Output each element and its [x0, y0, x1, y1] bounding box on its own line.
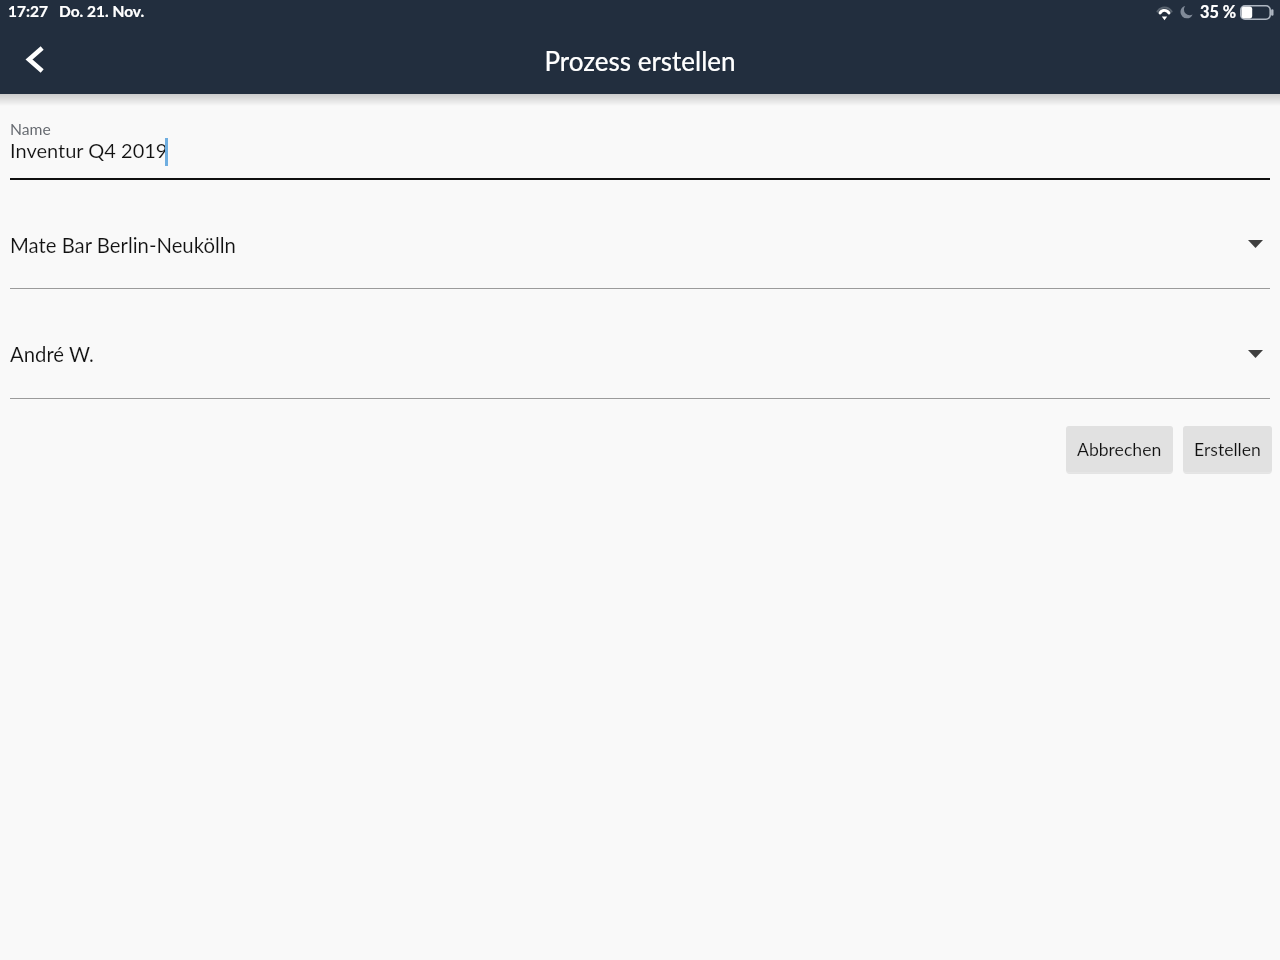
staticText: 17:27	[8, 2, 48, 21]
staticText: 35 %	[1200, 2, 1237, 22]
other: Akku 35 %	[1240, 5, 1274, 20]
other: Nicht stören	[1181, 5, 1193, 19]
button[interactable]: Name	[0, 94, 1280, 178]
staticText: Mate Bar Berlin-Neukölln	[10, 233, 236, 257]
button[interactable]: Mate Bar Berlin-Neukölln	[0, 178, 1280, 288]
staticText: André W.	[10, 342, 94, 366]
other: WLAN	[1156, 4, 1173, 20]
button[interactable]: Zurück	[10, 34, 60, 84]
staticText: Abbrechen	[1077, 439, 1162, 460]
staticText: Name	[10, 120, 51, 139]
staticText: Erstellen	[1194, 439, 1261, 460]
button[interactable]: André W.	[0, 288, 1280, 398]
staticText: Inventur Q4 2019	[10, 138, 168, 162]
staticText: Do. 21. Nov.	[59, 2, 145, 21]
staticText: Prozess erstellen	[0, 45, 1280, 76]
button[interactable]: Erstellen	[1183, 426, 1272, 472]
button[interactable]: Abbrechen	[1066, 426, 1173, 472]
